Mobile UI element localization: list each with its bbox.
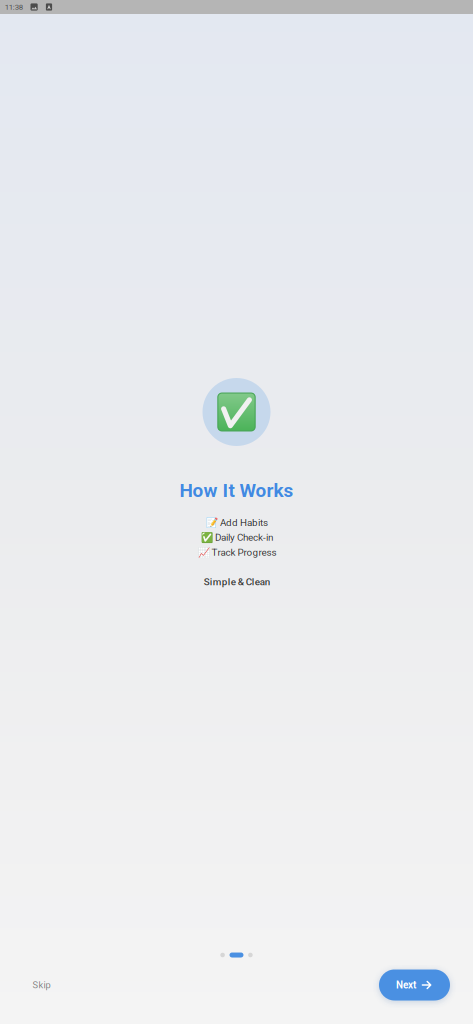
staticText: How It Works bbox=[179, 479, 293, 502]
staticText: 11:38 bbox=[5, 2, 23, 12]
button[interactable]: Next bbox=[379, 969, 450, 1000]
staticText: Simple & Clean bbox=[204, 576, 270, 588]
staticText: 📈 Track Progress bbox=[197, 547, 276, 558]
staticText: Skip bbox=[32, 979, 50, 990]
staticText: ✅ Daily Check-in bbox=[201, 532, 273, 543]
staticText: Next bbox=[396, 979, 416, 991]
staticText: 📝 Add Habits bbox=[206, 517, 268, 528]
button[interactable]: Skip bbox=[20, 970, 62, 999]
